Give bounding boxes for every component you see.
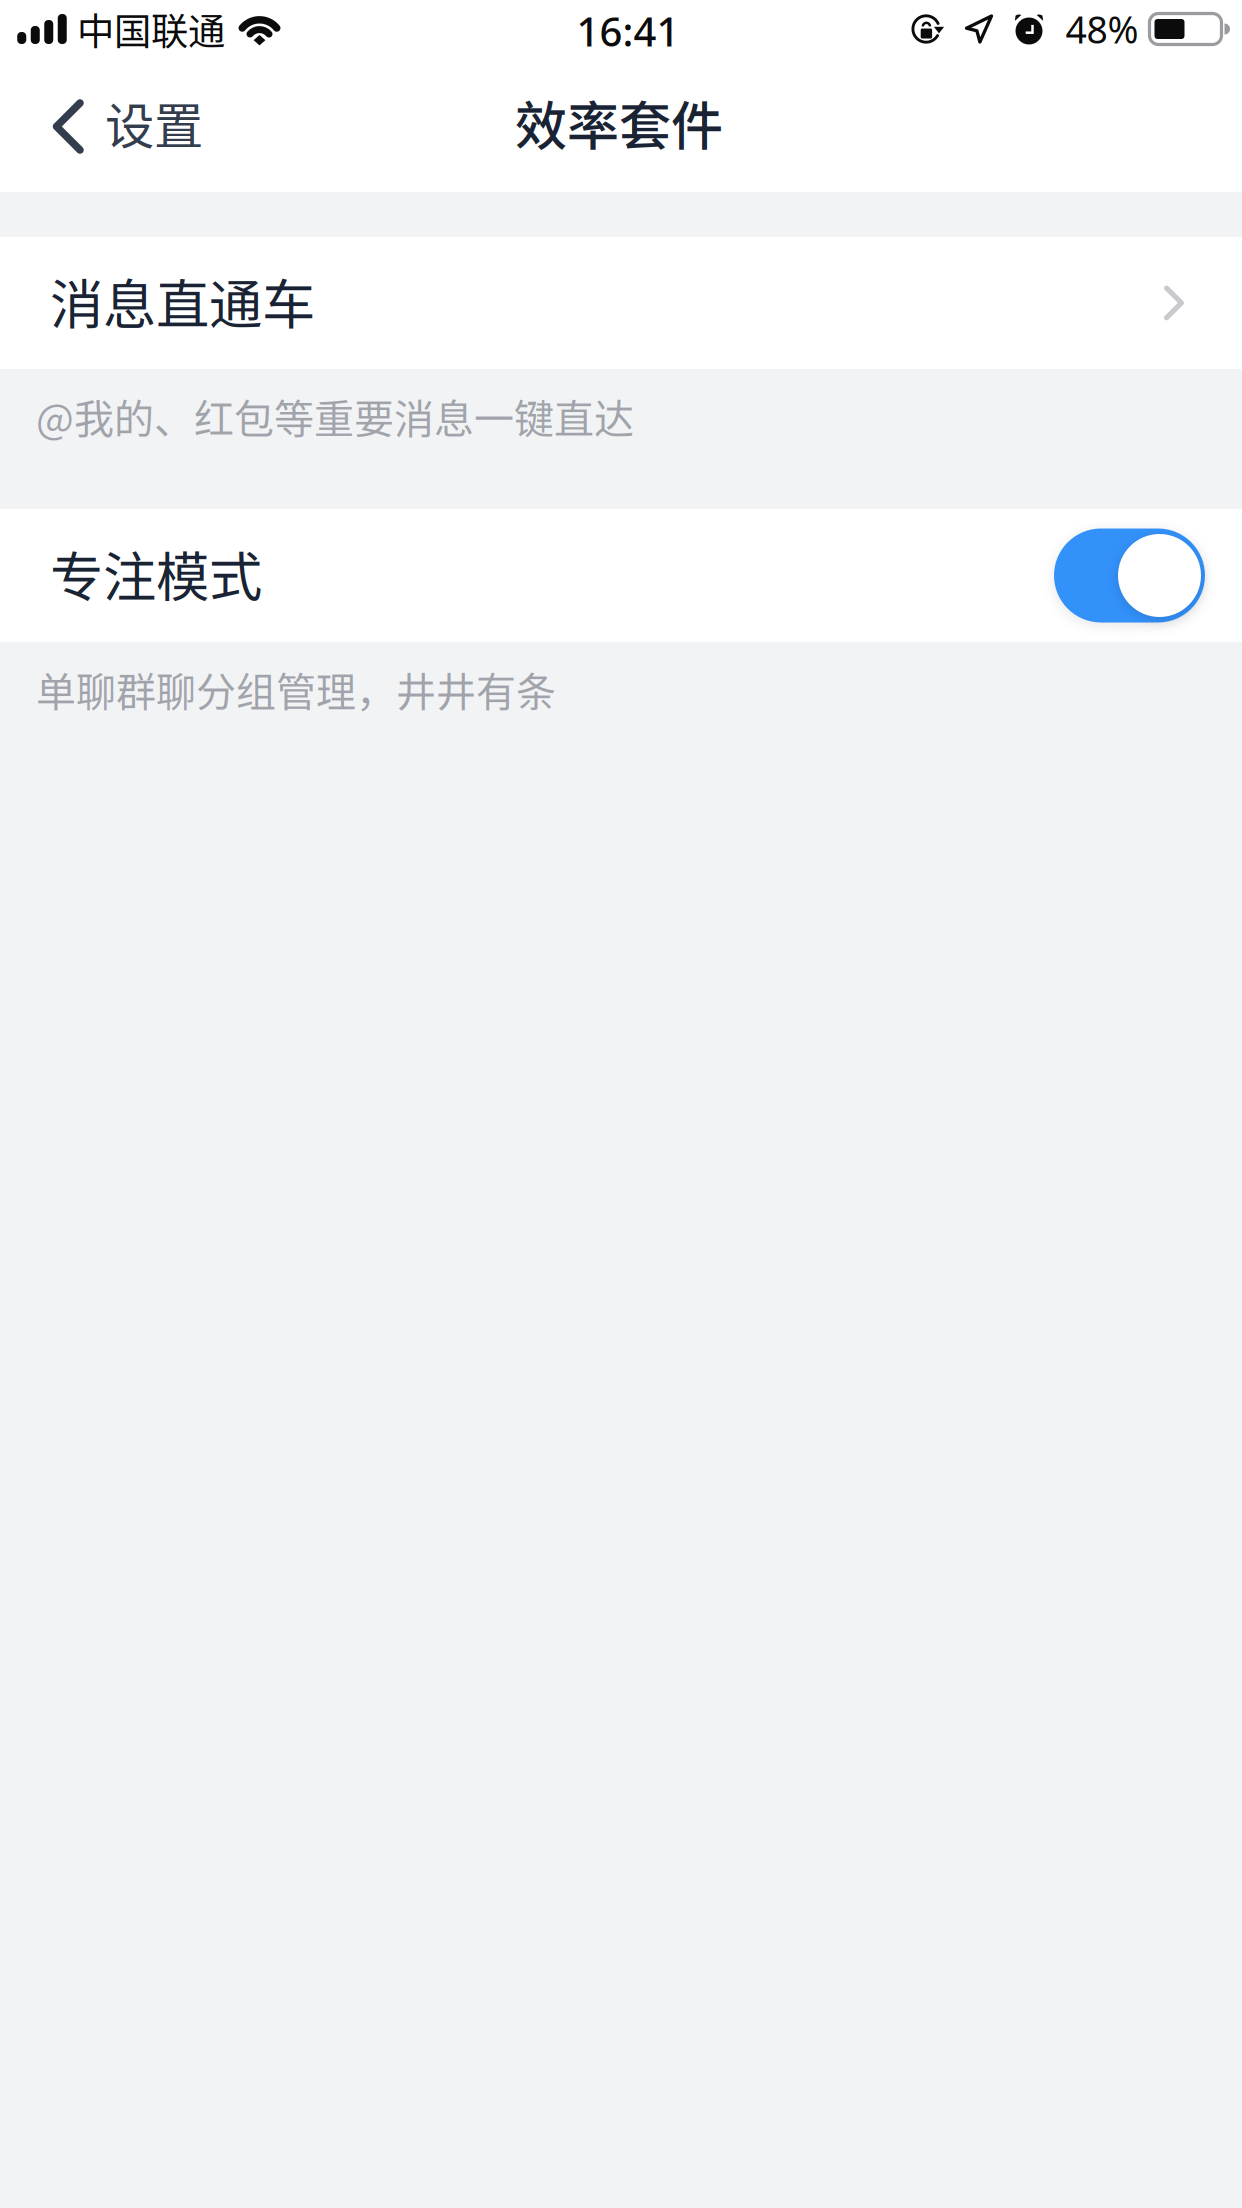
staticText: 设置	[105, 87, 203, 158]
staticText: 16:41	[576, 4, 679, 58]
button[interactable]: 消息直通车	[0, 237, 1242, 369]
staticText: 效率套件	[515, 85, 723, 160]
staticText: 专注模式	[50, 535, 262, 612]
button[interactable]: 返回设置	[0, 61, 233, 192]
staticText: 单聊群聊分组管理，井井有条	[36, 660, 556, 718]
button[interactable]: 专注模式	[0, 509, 1242, 642]
staticText: 中国联通	[77, 2, 225, 56]
staticText: @我的、红包等重要消息一键直达	[36, 387, 634, 445]
staticText: 消息直通车	[50, 262, 315, 340]
staticText: 48%	[1065, 4, 1138, 54]
